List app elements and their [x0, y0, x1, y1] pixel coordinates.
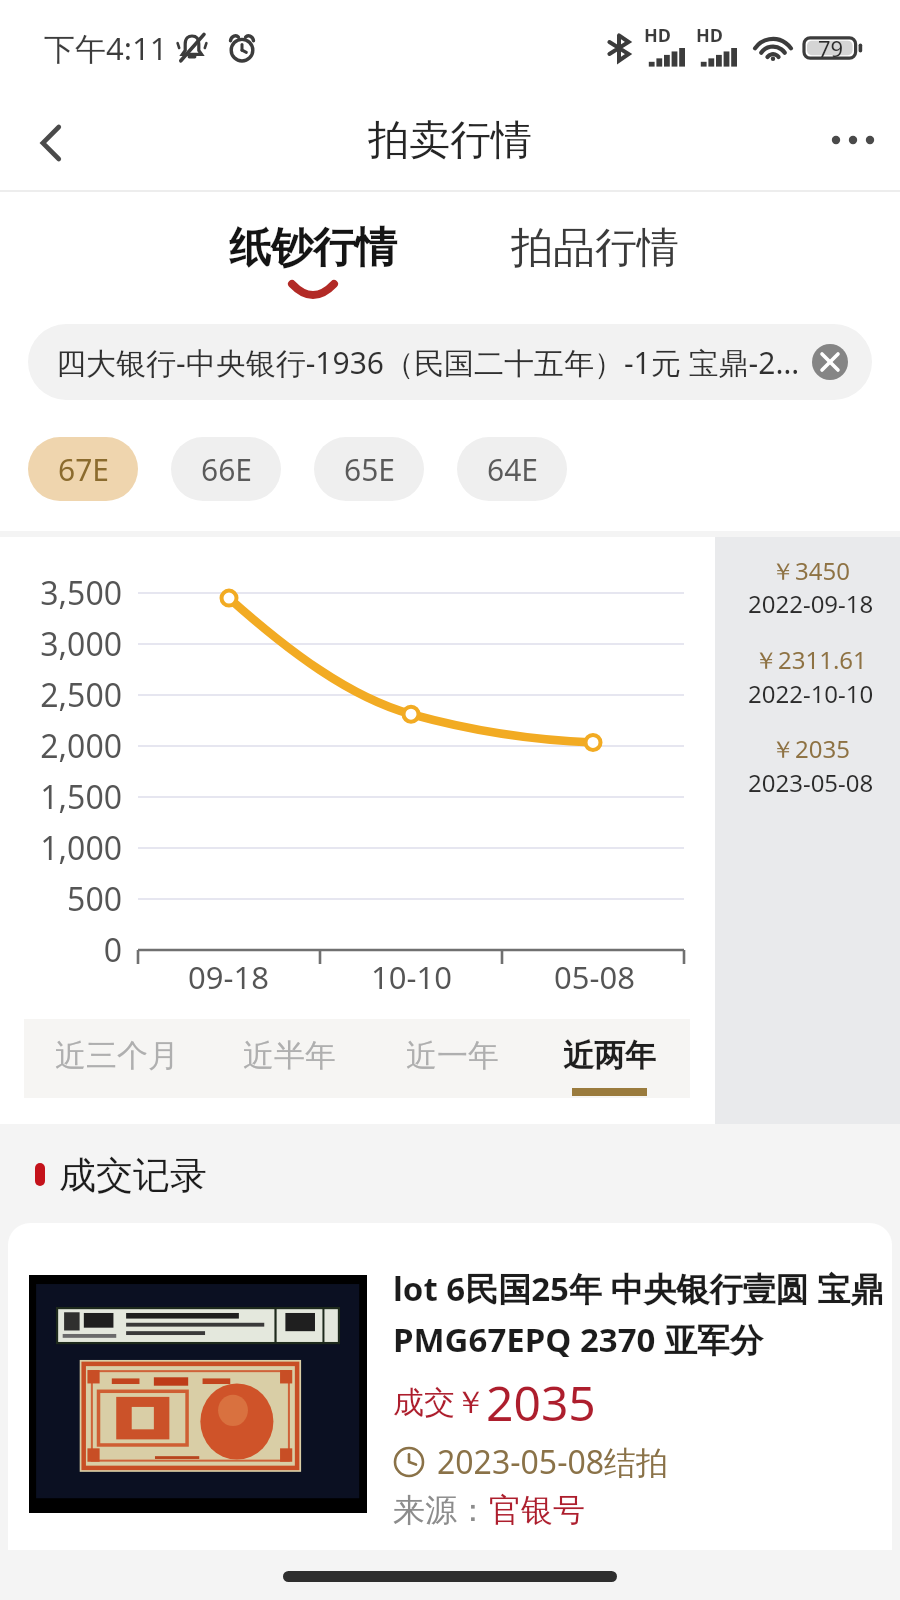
staticText: 2022-10-10 [748, 677, 874, 710]
staticText: 10-10 [371, 956, 452, 998]
button[interactable]: 66E [171, 437, 281, 501]
staticText: 下午4:11 [44, 27, 168, 69]
button[interactable]: 近两年 [544, 1019, 674, 1098]
staticText: 官银号 [489, 1490, 585, 1530]
staticText: 79 [818, 33, 844, 63]
button[interactable]: Clear search [812, 344, 848, 380]
button[interactable]: 四大银行-中央银行-1936（民国二十五年）-1元 宝鼎-2… [28, 324, 872, 400]
staticText: 1,500 [40, 775, 122, 819]
staticText: 成交￥ [393, 1383, 486, 1422]
button[interactable]: 拍品行情 [479, 192, 711, 320]
staticText: HD [644, 23, 671, 48]
staticText: 3,500 [40, 571, 122, 615]
button[interactable]: 近三个月 [42, 1019, 192, 1098]
staticText: 2023-05-08 [748, 766, 874, 799]
button[interactable]: Back [17, 110, 83, 176]
button[interactable]: 近半年 [224, 1019, 354, 1098]
staticText: 拍品行情 [511, 222, 679, 275]
button[interactable]: 65E [314, 437, 424, 501]
staticText: 500 [67, 877, 122, 921]
staticText: 2,000 [40, 724, 122, 768]
button[interactable]: More options [820, 110, 886, 176]
staticText: 66E [201, 449, 252, 490]
staticText: 近两年 [563, 1036, 656, 1075]
staticText: 拍卖行情 [368, 115, 532, 167]
staticText: 1,000 [40, 826, 122, 870]
staticText: 四大银行-中央银行-1936（民国二十五年）-1元 宝鼎-2… [56, 342, 804, 383]
staticText: 2023-05-08结拍 [437, 1440, 669, 1484]
staticText: 2,500 [40, 673, 122, 717]
staticText: ￥3450 [771, 554, 850, 587]
staticText: 来源： [393, 1490, 489, 1530]
staticText: ￥2035 [771, 732, 850, 765]
staticText: 0 [103, 928, 122, 972]
staticText: 近一年 [406, 1036, 499, 1075]
button[interactable]: 67E [28, 437, 138, 501]
staticText: 3,000 [40, 622, 122, 666]
button[interactable]: 近一年 [387, 1019, 517, 1098]
staticText: 纸钞行情 [229, 222, 397, 275]
staticText: 2022-09-18 [748, 587, 874, 620]
staticText: ￥2311.61 [754, 643, 867, 676]
button[interactable]: Banknote photo [8, 1223, 892, 1550]
staticText: 09-18 [188, 956, 269, 998]
staticText: HD [696, 23, 723, 48]
staticText: 近半年 [243, 1036, 336, 1075]
button[interactable]: 64E [457, 437, 567, 501]
staticText: 2035 [486, 1370, 596, 1426]
staticText: 64E [487, 449, 538, 490]
staticText: 05-08 [554, 956, 635, 998]
staticText: 65E [344, 449, 395, 490]
button[interactable]: 纸钞行情 [197, 192, 429, 320]
staticText: lot 6民国25年 中央银行壹圆 宝鼎 PMG67EPQ 2370 亚军分 [393, 1266, 884, 1362]
staticText: 67E [58, 449, 109, 490]
staticText: 近三个月 [55, 1036, 179, 1075]
button[interactable]: Banknote photo [29, 1275, 367, 1513]
staticText: 成交记录 [59, 1152, 207, 1194]
